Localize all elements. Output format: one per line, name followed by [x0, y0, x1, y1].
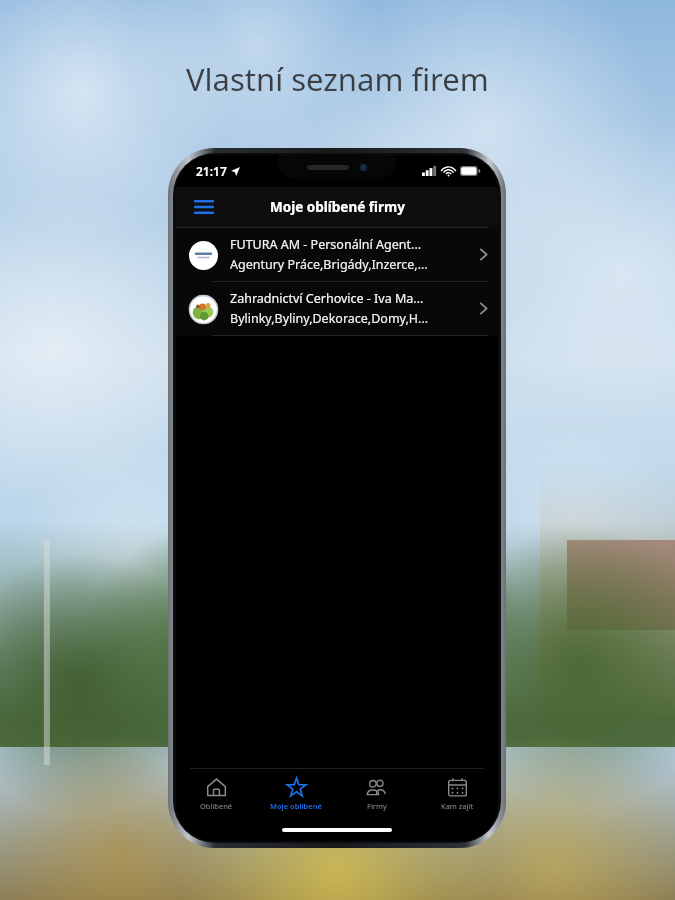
button[interactable]: Moje oblíbené — [256, 769, 336, 819]
staticText: FUTURA AM - Personální Agent... — [230, 236, 422, 253]
button[interactable]: Zahradnictví Cerhovice - Iva Ma... — [176, 282, 498, 335]
staticText: Oblíbené — [200, 801, 233, 811]
staticText: Vlastní seznam firem — [186, 58, 489, 100]
button[interactable]: Kam zajít — [417, 769, 498, 819]
button[interactable]: Firmy — [336, 769, 417, 819]
staticText: Bylinky,Byliny,Dekorace,Domy,H... — [230, 310, 429, 327]
button[interactable]: Menu — [186, 192, 222, 222]
button[interactable]: FUTURA AM - Personální Agent... — [176, 228, 498, 281]
button[interactable]: Oblíbené — [176, 769, 256, 819]
staticText: 21:17 — [196, 163, 227, 179]
staticText: Kam zajít — [441, 801, 474, 811]
staticText: Agentury Práce,Brigády,Inzerce,... — [230, 256, 428, 273]
staticText: Moje oblíbené — [270, 801, 322, 811]
staticText: Moje oblíbené firmy — [270, 198, 405, 216]
staticText: Zahradnictví Cerhovice - Iva Ma... — [230, 290, 424, 307]
staticText: Firmy — [367, 801, 387, 811]
